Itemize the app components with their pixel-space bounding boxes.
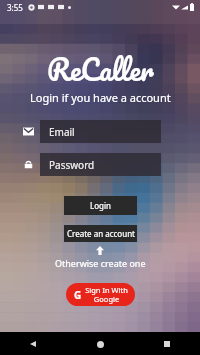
staticText: Create an account: [67, 228, 135, 239]
staticText: Login: [90, 200, 111, 211]
staticText: Sign In With Google: [85, 285, 128, 304]
button[interactable]: Create an account: [64, 225, 137, 242]
button[interactable]: G: [66, 283, 135, 306]
staticText: Login if you have a account: [30, 90, 171, 105]
button[interactable]: Recent apps: [156, 333, 178, 355]
button[interactable]: Login: [64, 196, 137, 215]
staticText: ReCaller: [47, 46, 154, 93]
staticText: G: [74, 288, 82, 302]
staticText: Password: [49, 158, 95, 172]
button[interactable]: Email: [40, 120, 161, 143]
staticText: 3:55: [7, 2, 23, 13]
button[interactable]: Home: [89, 333, 111, 355]
staticText: Otherwise create one: [55, 257, 146, 269]
staticText: Email: [49, 125, 75, 139]
button[interactable]: Password: [40, 153, 161, 176]
button[interactable]: Back: [22, 333, 44, 355]
